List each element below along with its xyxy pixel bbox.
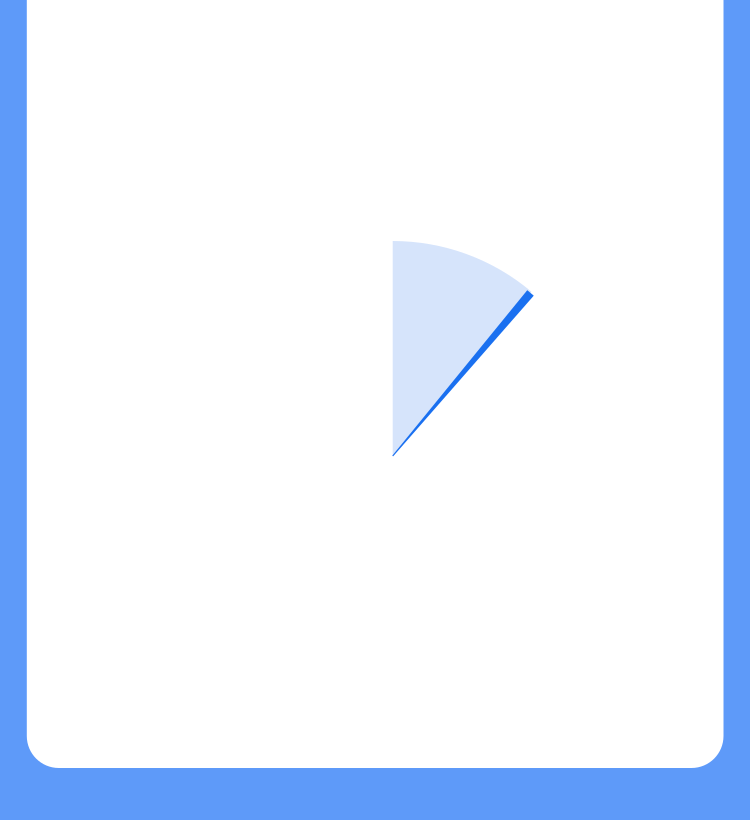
- button[interactable]: Scan progress: [243, 193, 543, 493]
